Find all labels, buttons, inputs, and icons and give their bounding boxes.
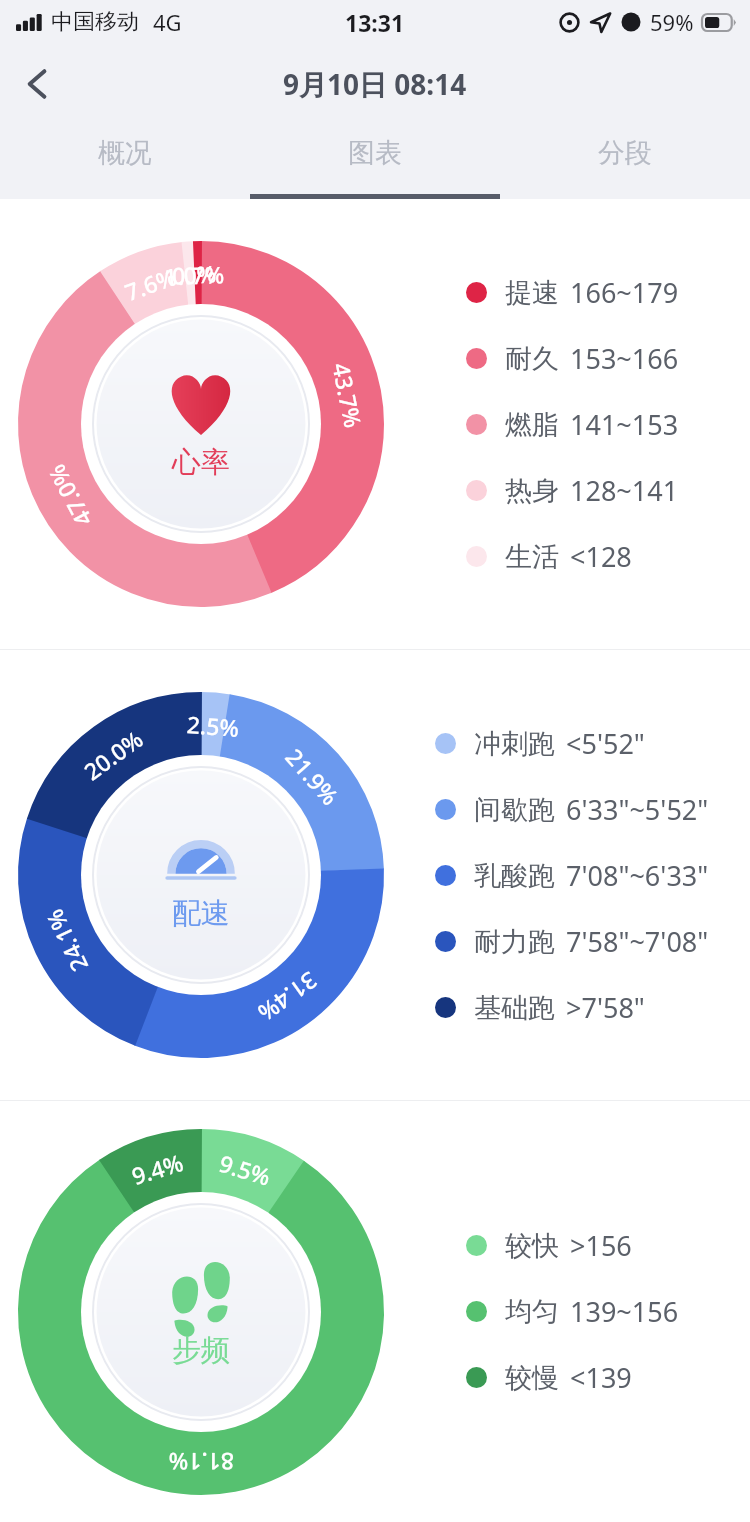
staticText: 9.4% xyxy=(128,1146,187,1191)
staticText: >7'58" xyxy=(566,989,645,1026)
button[interactable]: 耐久 xyxy=(466,340,679,377)
staticText: 中国移动 xyxy=(51,8,139,36)
staticText: 59% xyxy=(650,7,694,37)
button[interactable]: 耐力跑 xyxy=(435,923,709,960)
staticText: <5'52" xyxy=(566,725,645,762)
button[interactable]: 基础跑 xyxy=(435,989,645,1026)
staticText: 6'33"~5'52" xyxy=(566,791,709,828)
staticText: 耐力跑 xyxy=(474,925,555,959)
button[interactable]: 2.5% xyxy=(0,650,750,1100)
staticText: 心率 xyxy=(172,444,230,481)
button[interactable]: 冲刺跑 xyxy=(435,725,645,762)
button[interactable]: 概况 xyxy=(0,123,250,199)
staticText: 均匀 xyxy=(505,1295,559,1329)
staticText: 分段 xyxy=(598,136,652,170)
staticText: 24.1% xyxy=(38,904,94,977)
staticText: 配速 xyxy=(172,895,230,932)
button[interactable]: 图表 xyxy=(250,123,500,199)
staticText: <128 xyxy=(570,538,632,575)
staticText: 生活 xyxy=(505,540,559,574)
button[interactable]: 热身 xyxy=(466,472,679,509)
staticText: 2.5% xyxy=(186,708,241,743)
staticText: 9.5% xyxy=(216,1147,275,1192)
staticText: <139 xyxy=(570,1359,632,1396)
button[interactable]: Back xyxy=(6,52,70,116)
staticText: 提速 xyxy=(505,276,559,310)
staticText: 燃脂 xyxy=(505,408,559,442)
staticText: 耐久 xyxy=(505,342,559,376)
staticText: 20.0% xyxy=(77,723,149,786)
staticText: 较快 xyxy=(505,1229,559,1263)
button[interactable]: 9.5% xyxy=(0,1101,750,1522)
button[interactable]: 43.7% xyxy=(0,199,750,649)
staticText: 0.7% xyxy=(172,258,225,291)
staticText: 31.4% xyxy=(252,966,324,1029)
staticText: 21.9% xyxy=(279,741,346,811)
button[interactable]: 乳酸跑 xyxy=(435,857,709,894)
staticText: 141~153 xyxy=(570,406,679,443)
staticText: 基础跑 xyxy=(474,991,555,1025)
staticText: 图表 xyxy=(348,136,402,170)
staticText: 166~179 xyxy=(570,274,679,311)
staticText: 9月10日 08:14 xyxy=(283,65,467,103)
staticText: 13:31 xyxy=(345,7,405,38)
button[interactable]: 较慢 xyxy=(466,1359,632,1396)
staticText: 较慢 xyxy=(505,1361,559,1395)
staticText: 81.1% xyxy=(168,1447,234,1478)
staticText: 热身 xyxy=(505,474,559,508)
staticText: 冲刺跑 xyxy=(474,727,555,761)
staticText: 153~166 xyxy=(570,340,679,377)
staticText: 步频 xyxy=(172,1332,230,1369)
staticText: 47.0% xyxy=(40,459,98,532)
button[interactable]: 燃脂 xyxy=(466,406,679,443)
staticText: 43.7% xyxy=(326,360,370,431)
staticText: 139~156 xyxy=(570,1293,679,1330)
button[interactable]: 较快 xyxy=(466,1227,632,1264)
button[interactable]: 间歇跑 xyxy=(435,791,709,828)
staticText: 7'08"~6'33" xyxy=(566,857,709,894)
button[interactable]: 分段 xyxy=(500,123,750,199)
button[interactable]: 均匀 xyxy=(466,1293,679,1330)
staticText: 乳酸跑 xyxy=(474,859,555,893)
staticText: 间歇跑 xyxy=(474,793,555,827)
staticText: 7.6% xyxy=(120,260,181,307)
button[interactable]: 生活 xyxy=(466,538,632,575)
button[interactable]: 提速 xyxy=(466,274,679,311)
staticText: 4G xyxy=(153,7,182,37)
staticText: 概况 xyxy=(98,136,152,170)
staticText: 1.0% xyxy=(163,257,218,292)
staticText: 128~141 xyxy=(570,472,679,509)
staticText: 7'58"~7'08" xyxy=(566,923,709,960)
staticText: >156 xyxy=(570,1227,632,1264)
